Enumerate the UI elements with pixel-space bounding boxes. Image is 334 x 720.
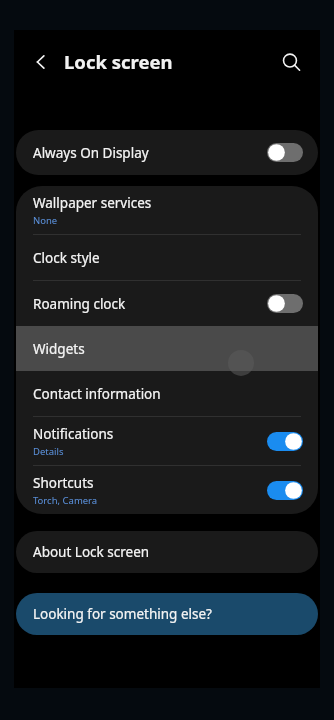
button[interactable]: Looking for something else? [16,593,318,635]
staticText: Always On Display [33,144,149,162]
button[interactable]: Always On Display [16,130,318,175]
staticText: Wallpaper services [33,194,152,212]
button[interactable]: Widgets [16,326,318,371]
staticText: Roaming clock [33,295,126,313]
staticText: Clock style [33,249,100,267]
button[interactable]: Wallpaper services [16,186,318,234]
staticText: Torch, Camera [33,494,98,507]
button[interactable]: Roaming clock [16,281,318,326]
button[interactable]: Off [267,294,303,313]
button[interactable]: On [267,432,303,451]
staticText: Lock screen [64,49,173,74]
button[interactable]: Notifications [16,417,318,465]
button[interactable]: About Lock screen [16,531,318,573]
staticText: None [33,214,58,227]
button[interactable]: Contact information [16,371,318,416]
button[interactable]: Off [267,143,303,162]
button[interactable]: Back [25,46,57,78]
button[interactable]: Shortcuts [16,466,318,514]
button[interactable]: Search [274,45,308,79]
staticText: Details [33,445,64,458]
staticText: Widgets [33,340,85,358]
staticText: About Lock screen [33,543,150,561]
staticText: Notifications [33,425,114,443]
staticText: Looking for something else? [33,605,212,623]
button[interactable]: Clock style [16,235,318,280]
button[interactable]: On [267,481,303,500]
staticText: Contact information [33,385,161,403]
staticText: Shortcuts [33,474,94,492]
